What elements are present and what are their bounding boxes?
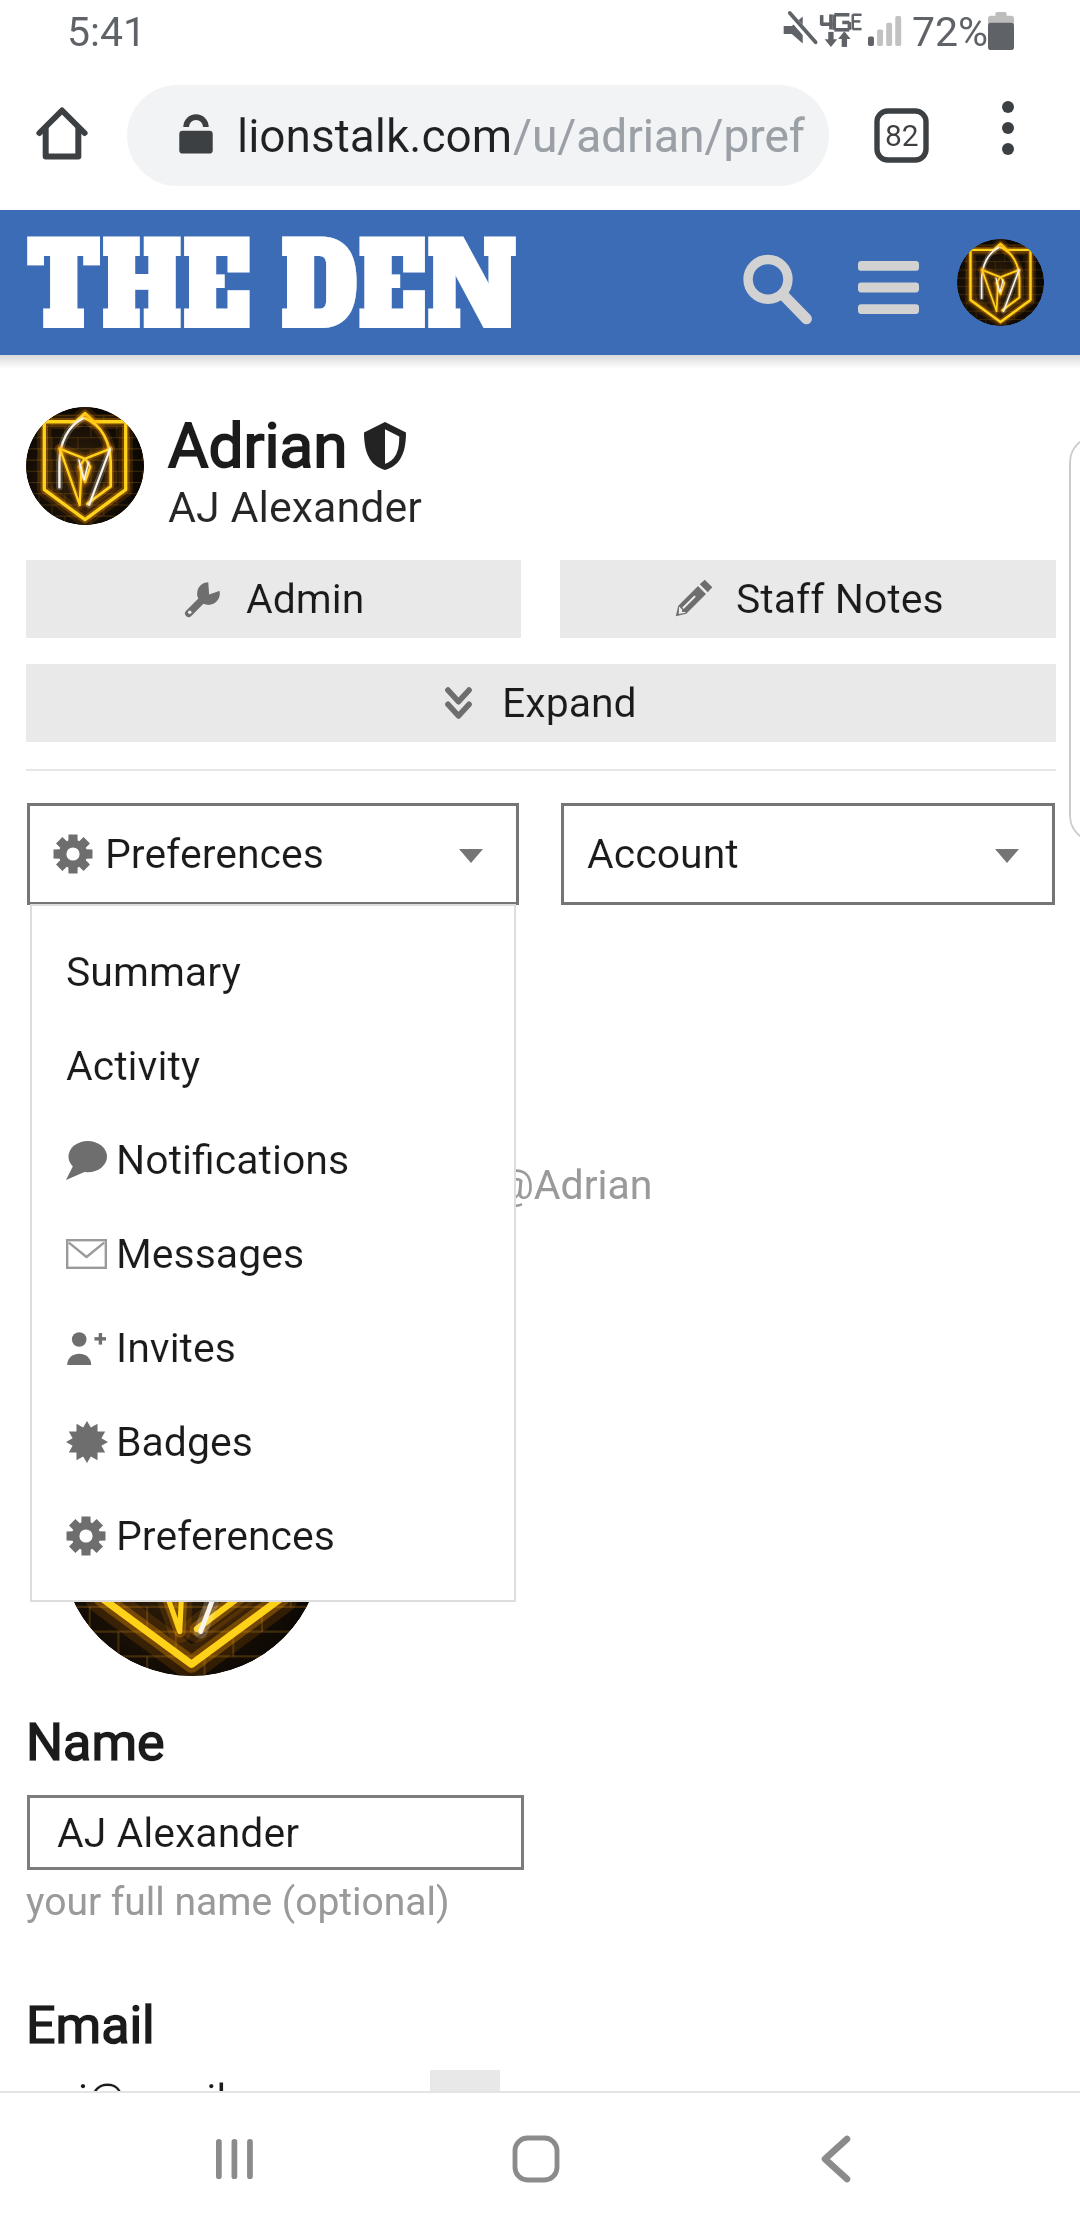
staticText: Messages [116,1230,305,1278]
button[interactable]: Avatar [26,407,144,525]
button[interactable]: Activity [30,1019,516,1113]
button[interactable]: Preferences [30,1489,516,1583]
staticText: Badges [116,1418,253,1466]
staticText: /u/adrian/pref [513,109,805,163]
button[interactable]: Invites [30,1301,516,1395]
button[interactable]: lionstalk.com [127,85,829,186]
staticText: Name [26,1712,165,1773]
staticText: Account [587,830,739,878]
staticText: Notifications [116,1136,350,1184]
button[interactable]: Notifications [30,1113,516,1207]
button[interactable]: Summary [30,925,516,1019]
staticText: Expand [502,679,637,727]
staticText: Summary [66,948,241,996]
staticText: AJ Alexander [168,482,422,532]
button[interactable]: THE DEN home [20,228,530,338]
staticText: Adrian [168,409,348,482]
button[interactable]: Preferences [27,803,519,905]
button[interactable]: Messages [30,1207,516,1301]
button[interactable]: Home [476,2099,596,2219]
button[interactable]: AJ Alexander [27,1795,524,1870]
button[interactable]: Recent apps [174,2099,294,2219]
button[interactable]: Search [726,237,824,335]
staticText: THE DEN [26,206,518,351]
button[interactable]: Back [776,2099,896,2219]
staticText: Email [26,1995,155,2056]
button[interactable]: Admin [26,560,521,638]
button[interactable]: Badges [30,1395,516,1489]
button[interactable]: Tabs [877,111,926,160]
staticText: your full name (optional) [26,1879,450,1925]
staticText: Staff Notes [736,575,944,623]
staticText: 82 [885,118,919,153]
staticText: Admin [246,575,365,623]
staticText: 72% [912,8,989,56]
button[interactable]: Expand [26,664,1056,742]
staticText: Preferences [116,1512,335,1560]
button[interactable]: More options [980,100,1036,156]
staticText: Preferences [105,830,324,878]
staticText: Activity [66,1042,201,1090]
staticText: 5:41 [67,8,147,56]
staticText: AJ Alexander [57,1809,300,1857]
staticText: @Adrian [497,1161,653,1209]
button[interactable]: Menu [838,237,938,337]
button[interactable]: Staff Notes [560,560,1056,638]
staticText: Invites [116,1324,236,1372]
staticText: aj@gmail.com [56,2075,318,2123]
button[interactable]: Home [24,96,100,172]
button[interactable]: Account [561,803,1055,905]
staticText: lionstalk.com [237,109,513,163]
button[interactable]: Profile [957,239,1044,326]
